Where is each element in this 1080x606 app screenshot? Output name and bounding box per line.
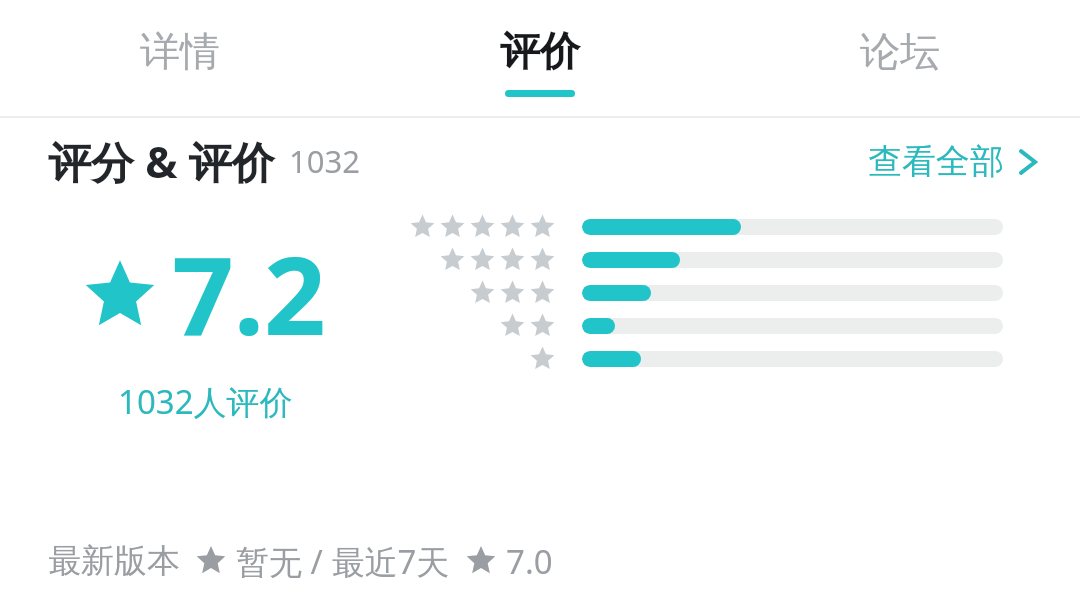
staticText: 7.2 — [172, 220, 326, 367]
staticText: 论坛 — [860, 26, 940, 76]
staticText: 评价 — [500, 26, 580, 76]
button[interactable]: 评价 — [360, 0, 720, 118]
button[interactable]: 详情 — [0, 0, 360, 118]
staticText: 详情 — [140, 26, 220, 76]
button[interactable]: 论坛 — [720, 0, 1080, 118]
staticText: 评分 & 评价 — [48, 132, 275, 191]
staticText: 暂无 / 最近7天 — [236, 539, 450, 584]
staticText: 7.0 — [506, 539, 553, 584]
button[interactable]: 查看全部 — [868, 132, 1038, 191]
staticText: 最新版本 — [48, 540, 180, 582]
staticText: 1032人评价 — [118, 379, 293, 424]
other: View all — [1018, 145, 1038, 179]
staticText: 1032 — [289, 140, 360, 182]
staticText: 查看全部 — [868, 140, 1004, 183]
